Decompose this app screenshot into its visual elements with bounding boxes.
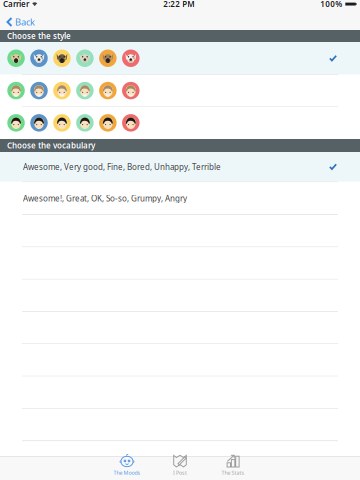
staticText: Back: [15, 16, 35, 28]
staticText: Choose the vocabulary: [7, 140, 95, 151]
staticText: The Stats: [221, 469, 244, 476]
button[interactable]: Awesome, Very good, Fine, Bored, Unhappy…: [0, 152, 360, 182]
button[interactable]: I Post: [153, 457, 206, 480]
button[interactable]: The Moods: [100, 457, 153, 480]
staticText: 100%: [320, 0, 342, 9]
staticText: 2:22 PM: [163, 0, 194, 9]
button[interactable]: [0, 107, 360, 139]
staticText: Awesome!, Great, OK, So-so, Grumpy, Angr…: [23, 193, 187, 204]
staticText: Carrier: [3, 0, 29, 9]
button[interactable]: [0, 42, 360, 74]
staticText: Choose the style: [7, 31, 71, 41]
button[interactable]: Back: [0, 14, 43, 30]
staticText: The Moods: [113, 469, 140, 476]
button[interactable]: Awesome!, Great, OK, So-so, Grumpy, Angr…: [0, 182, 360, 214]
button[interactable]: The Stats: [206, 457, 259, 480]
staticText: Awesome, Very good, Fine, Bored, Unhappy…: [23, 161, 221, 172]
button[interactable]: [0, 75, 360, 106]
staticText: I Post: [173, 469, 187, 476]
